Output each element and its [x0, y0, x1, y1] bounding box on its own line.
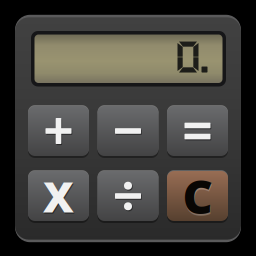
staticText: C: [183, 167, 213, 229]
button[interactable]: Multiply: [28, 171, 89, 221]
button[interactable]: Clear: [167, 171, 228, 221]
button[interactable]: Minus: [97, 106, 158, 156]
button[interactable]: Plus: [28, 106, 89, 156]
staticText: X: [43, 168, 74, 224]
button[interactable]: Equals: [167, 106, 228, 156]
button[interactable]: Divide: [97, 171, 158, 221]
staticText: X: [44, 169, 75, 226]
staticText: C: [182, 165, 212, 227]
